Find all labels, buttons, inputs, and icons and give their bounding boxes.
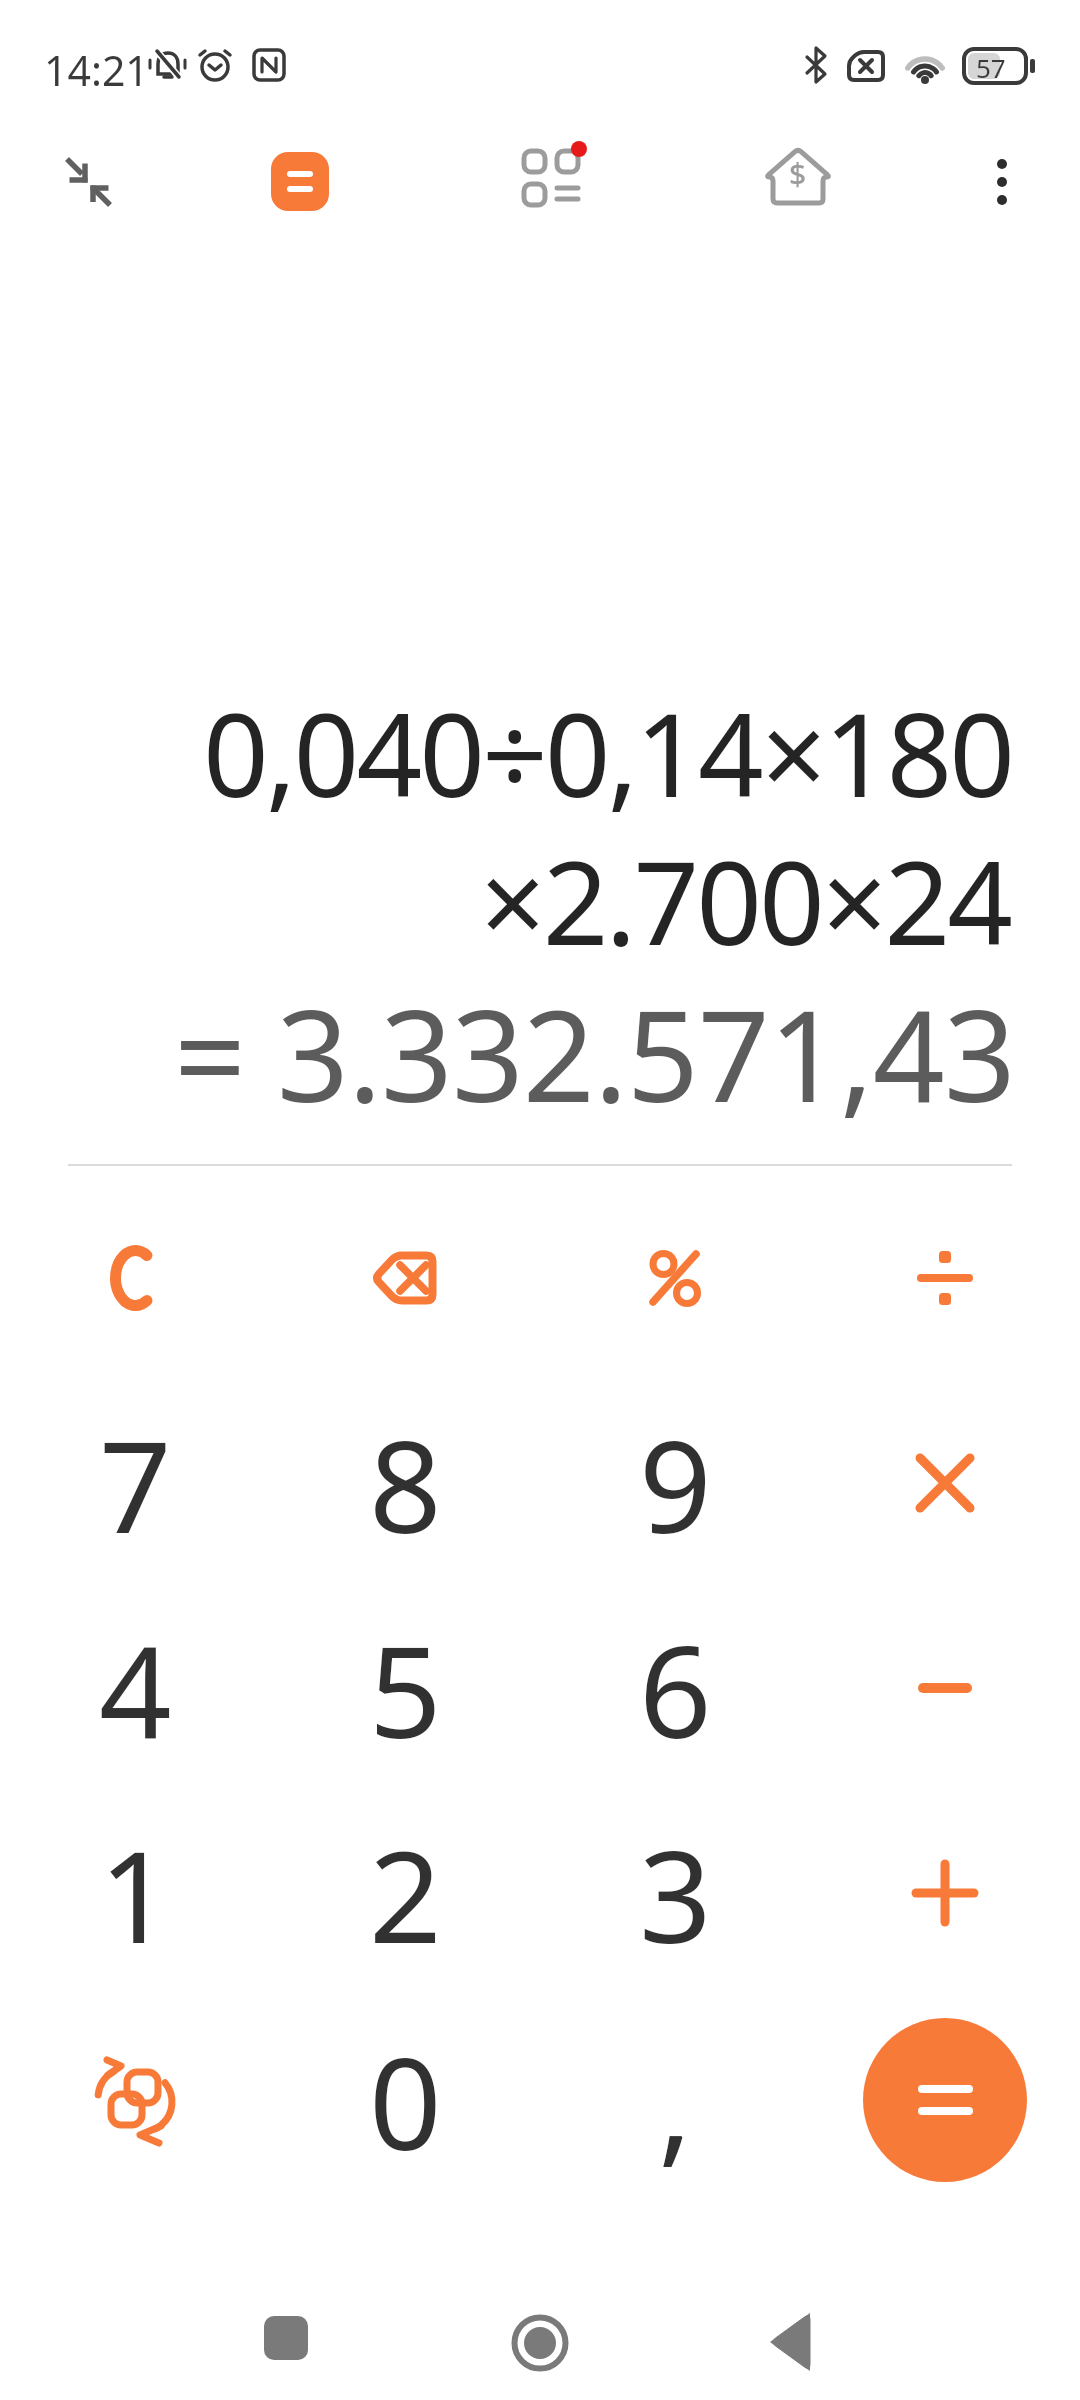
button[interactable]: 4 [15, 1598, 255, 1778]
button[interactable] [825, 1803, 1065, 1983]
button[interactable] [825, 1598, 1065, 1778]
staticText: $ [789, 153, 807, 194]
button[interactable]: 8 [285, 1393, 525, 1573]
staticText: 1 [99, 1807, 172, 1980]
button[interactable] [511, 2314, 569, 2372]
button[interactable] [285, 1188, 525, 1368]
button[interactable] [64, 154, 116, 210]
button[interactable]: 5 [285, 1598, 525, 1778]
button[interactable]: 1 [15, 1803, 255, 1983]
staticText: 8 [369, 1397, 442, 1570]
staticText: 0 [369, 2014, 442, 2187]
button[interactable] [825, 1393, 1065, 1573]
staticText: 57 [976, 50, 1006, 85]
button[interactable]: 9 [555, 1393, 795, 1573]
staticText: 5 [369, 1602, 442, 1775]
staticText: 9 [639, 1397, 712, 1570]
staticText: 2 [369, 1807, 442, 1980]
button[interactable] [15, 2010, 255, 2190]
staticText: = 3.332.571,43 [174, 967, 1015, 1133]
staticText: 14:21 [44, 42, 149, 98]
button[interactable] [518, 141, 590, 209]
button[interactable]: $ [760, 143, 836, 207]
button[interactable] [15, 1188, 255, 1368]
button[interactable]: 0 [285, 2010, 525, 2190]
button[interactable]: 3 [555, 1803, 795, 1983]
button[interactable] [767, 2311, 813, 2373]
staticText: 4 [99, 1602, 172, 1775]
button[interactable]: 2 [285, 1803, 525, 1983]
button[interactable] [555, 1188, 795, 1368]
button[interactable] [984, 146, 1020, 218]
staticText: 6 [639, 1602, 712, 1775]
button[interactable] [825, 1188, 1065, 1368]
button[interactable]: 7 [15, 1393, 255, 1573]
button[interactable] [271, 152, 329, 211]
staticText: 7 [99, 1397, 172, 1570]
staticText: ×2.700×24 [480, 822, 1011, 979]
button[interactable] [863, 2018, 1027, 2182]
staticText: , [658, 2015, 693, 2188]
staticText: 3 [639, 1807, 712, 1980]
button[interactable] [264, 2316, 308, 2360]
staticText: 0,040÷0,14×180 [203, 674, 1013, 831]
button[interactable]: 6 [555, 1598, 795, 1778]
button[interactable]: , [555, 2010, 795, 2190]
